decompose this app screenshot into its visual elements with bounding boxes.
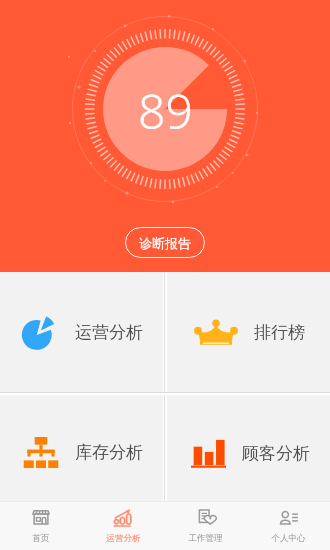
button[interactable]: 工作管理 xyxy=(164,501,247,550)
button[interactable]: 个人中心 xyxy=(247,501,330,550)
staticText: 诊断报告 xyxy=(139,235,191,251)
button[interactable]: 顾客分析 xyxy=(167,395,330,501)
staticText: 工作管理 xyxy=(188,533,223,544)
button[interactable]: 排行榜 xyxy=(167,272,330,392)
staticText: 89 xyxy=(138,78,193,143)
button[interactable]: 库存分析 xyxy=(0,395,163,501)
staticText: 运营分析 xyxy=(75,322,143,343)
staticText: 排行榜 xyxy=(254,322,305,343)
staticText: 库存分析 xyxy=(75,442,143,463)
button[interactable]: 诊断报告 xyxy=(125,227,205,258)
staticText: 首页 xyxy=(32,533,50,544)
button[interactable]: 运营分析 xyxy=(0,272,163,392)
button[interactable]: 运营分析 xyxy=(82,501,164,550)
staticText: 个人中心 xyxy=(271,533,306,544)
button[interactable]: 首页 xyxy=(0,501,82,550)
staticText: 运营分析 xyxy=(106,533,141,544)
staticText: 顾客分析 xyxy=(242,443,310,464)
